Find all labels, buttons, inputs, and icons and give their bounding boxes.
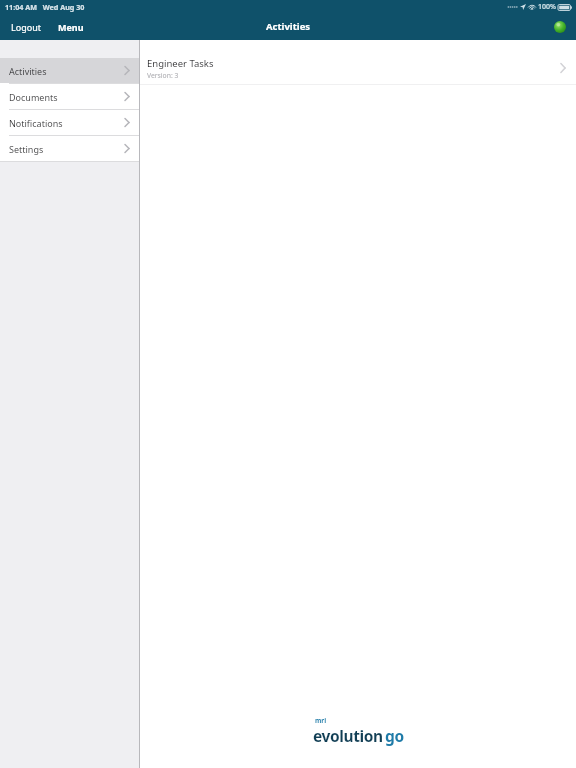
- staticText: Documents: [9, 91, 122, 103]
- staticText: Activities: [266, 20, 311, 33]
- button[interactable]: Settings: [0, 136, 140, 161]
- staticText: Engineer Tasks: [147, 57, 214, 70]
- staticText: Notifications: [9, 117, 122, 129]
- staticText: evolution: [313, 725, 383, 746]
- button[interactable]: Activities: [0, 58, 140, 83]
- staticText: Settings: [9, 143, 122, 155]
- staticText: go: [385, 725, 404, 746]
- staticText: Activities: [9, 65, 122, 77]
- staticText: Menu: [58, 21, 84, 33]
- staticText: 11:04 AM Wed Aug 30: [5, 2, 85, 12]
- button[interactable]: Documents: [0, 84, 140, 109]
- button[interactable]: Engineer Tasks: [140, 52, 576, 84]
- button[interactable]: Notifications: [0, 110, 140, 135]
- button[interactable]: Menu: [56, 18, 86, 36]
- button[interactable]: Logout: [9, 18, 43, 36]
- button[interactable]: Connection status: online: [552, 19, 568, 35]
- staticText: Logout: [11, 21, 41, 33]
- staticText: Version: 3: [147, 71, 179, 80]
- staticText: 100%: [538, 2, 556, 12]
- staticText: mri: [315, 716, 327, 725]
